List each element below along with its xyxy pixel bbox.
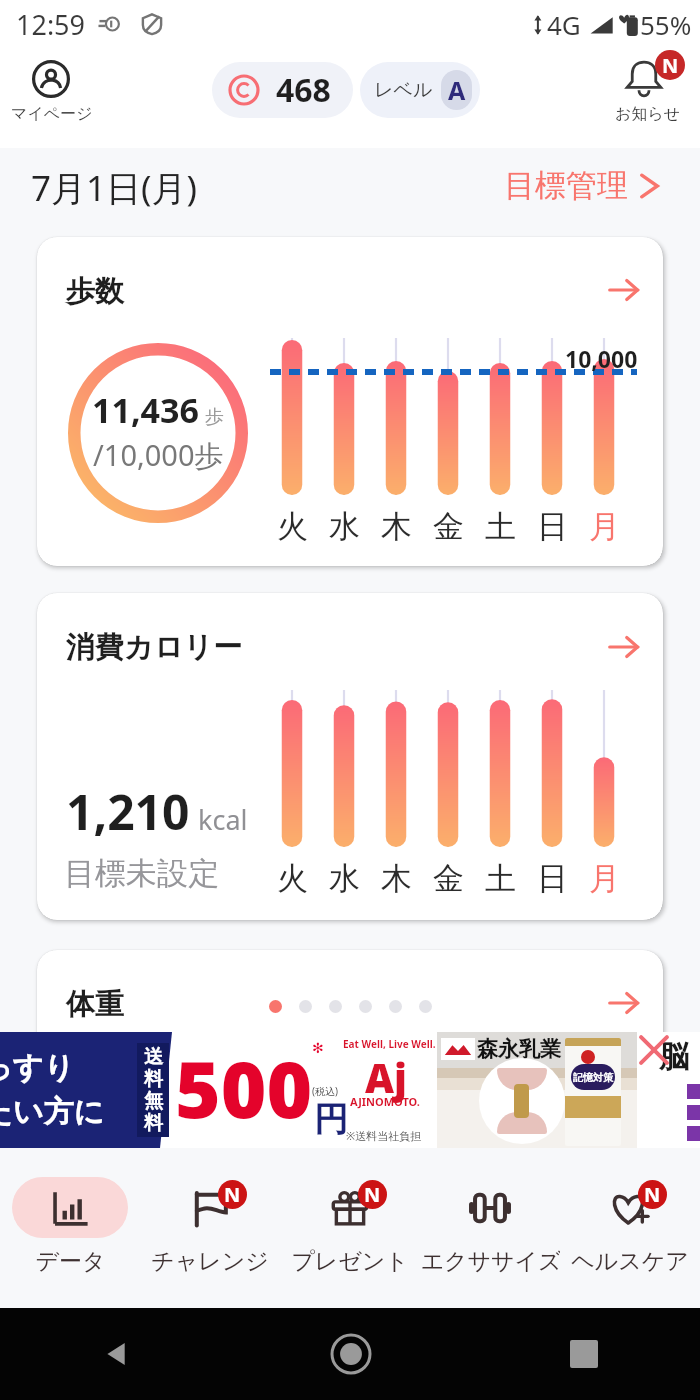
staticText: 土	[485, 859, 516, 898]
staticText: 月	[589, 859, 620, 898]
button[interactable]: っすり	[0, 1032, 700, 1148]
staticText: 日	[537, 859, 568, 898]
staticText: プレゼント	[291, 1247, 409, 1276]
staticText: 森永乳業	[477, 1036, 561, 1062]
staticText: 468	[276, 68, 331, 112]
staticText: AJINOMOTO.	[350, 1094, 420, 1109]
staticText: 歩数	[66, 273, 124, 310]
staticText: 11,436	[92, 387, 199, 433]
staticText: /10,000歩	[93, 435, 224, 475]
staticText: Aj	[365, 1050, 407, 1104]
button[interactable]: 体重	[37, 950, 663, 1070]
button[interactable]: 歩数詳細	[607, 273, 641, 307]
staticText: ヘルスケア	[571, 1247, 689, 1276]
staticText: 記憶対策	[573, 1071, 613, 1084]
button[interactable]: エクササイズ	[420, 1152, 560, 1308]
staticText: N	[224, 1181, 241, 1208]
staticText: 目標管理	[504, 166, 628, 205]
button[interactable]: 468	[212, 62, 353, 118]
button[interactable]: N	[560, 1152, 700, 1308]
staticText: N	[364, 1181, 381, 1208]
staticText: kcal	[198, 801, 248, 838]
staticText: 送 料 無 料	[144, 1045, 163, 1135]
staticText: お知らせ	[615, 104, 681, 124]
staticText: Eat Well, Live Well.	[343, 1037, 436, 1051]
staticText: 7月1日(月)	[31, 164, 198, 212]
button[interactable]: N	[140, 1152, 280, 1308]
staticText: 月	[589, 507, 620, 546]
staticText: 目標未設定	[64, 854, 219, 893]
staticText: レベル	[374, 78, 433, 102]
staticText: 12:59	[16, 6, 86, 43]
button[interactable]: 消費カロリー詳細	[607, 630, 641, 664]
staticText: 土	[485, 507, 516, 546]
staticText: (税込)	[312, 1084, 338, 1098]
button[interactable]: 歩数	[37, 237, 663, 566]
staticText: 日	[537, 507, 568, 546]
button[interactable]: マイページ	[8, 52, 94, 134]
staticText: 歩	[205, 405, 224, 429]
staticText: マイページ	[11, 104, 93, 124]
button[interactable]: 広告を閉じる	[632, 1028, 676, 1072]
staticText: 55%	[640, 7, 692, 42]
staticText: N	[644, 1181, 661, 1208]
staticText: エクササイズ	[420, 1247, 560, 1276]
button[interactable]: レベル	[360, 62, 480, 118]
button[interactable]: データ	[0, 1152, 140, 1308]
staticText: ※送料当社負担	[346, 1128, 422, 1143]
staticText: 水	[329, 507, 360, 546]
staticText: チャレンジ	[151, 1247, 269, 1276]
staticText: N	[662, 52, 679, 79]
staticText: 500	[175, 1035, 313, 1141]
button[interactable]: お知らせ	[600, 52, 692, 134]
staticText: っすり	[0, 1049, 75, 1087]
button[interactable]: N	[280, 1152, 420, 1308]
staticText: 脳	[659, 1038, 689, 1076]
button[interactable]: 目標管理	[498, 160, 668, 211]
staticText: 水	[329, 859, 360, 898]
staticText: 円	[314, 1098, 348, 1141]
staticText: たい方に	[0, 1093, 105, 1131]
button[interactable]: 消費カロリー	[37, 593, 663, 920]
staticText: データ	[35, 1247, 106, 1276]
staticText: A	[448, 73, 466, 107]
staticText: 消費カロリー	[66, 629, 243, 666]
staticText: 木	[381, 859, 412, 898]
staticText: 木	[381, 507, 412, 546]
staticText: 金	[433, 859, 464, 898]
staticText: 火	[277, 859, 308, 898]
staticText: 火	[277, 507, 308, 546]
staticText: 4G	[547, 7, 581, 42]
staticText: 体重	[66, 986, 124, 1023]
staticText: 10,000	[565, 343, 638, 374]
staticText: ✻	[312, 1040, 324, 1056]
staticText: 1,210	[66, 779, 190, 844]
staticText: 金	[433, 507, 464, 546]
